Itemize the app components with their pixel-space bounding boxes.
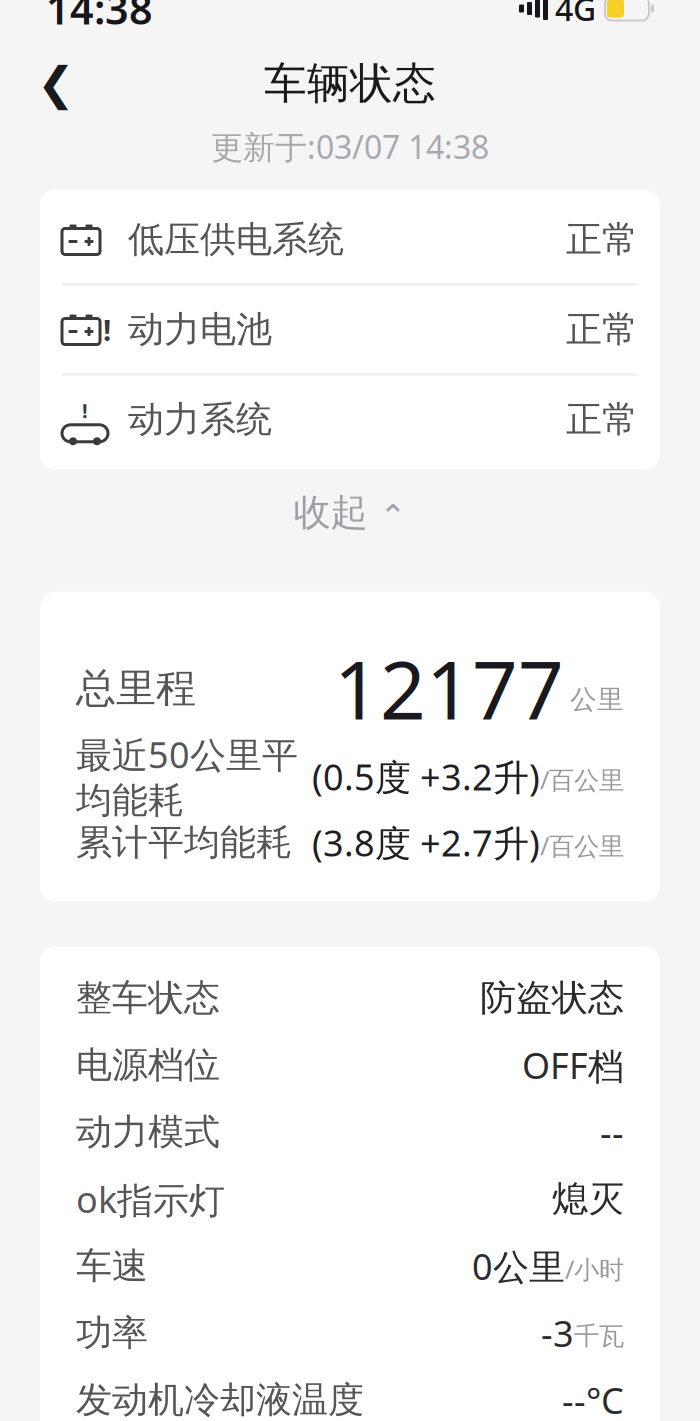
- staticText: (3.8度 +2.7升): [312, 819, 540, 866]
- staticText: 防盗状态: [480, 976, 624, 1020]
- staticText: 最近50公里平均能耗: [76, 730, 298, 822]
- staticText: 功率: [76, 1311, 148, 1355]
- button[interactable]: 低压供电系统: [40, 195, 660, 283]
- staticText: 12177: [334, 635, 564, 742]
- staticText: 整车状态: [76, 976, 220, 1020]
- staticText: /百公里: [540, 829, 624, 862]
- staticText: /小时: [565, 1252, 624, 1286]
- button[interactable]: 返回: [24, 51, 88, 115]
- staticText: ok指示灯: [76, 1175, 225, 1223]
- staticText: 4G: [555, 0, 596, 30]
- staticText: 正常: [566, 397, 638, 442]
- staticText: 正常: [566, 217, 638, 262]
- staticText: ❮: [37, 58, 75, 109]
- staticText: 动力模式: [76, 1110, 220, 1154]
- staticText: 动力系统: [128, 397, 272, 442]
- staticText: -3: [541, 1309, 574, 1357]
- staticText: (0.5度 +3.2升): [312, 753, 540, 800]
- staticText: 正常: [566, 307, 638, 352]
- staticText: 发动机冷却液温度: [76, 1378, 364, 1421]
- staticText: 电源档位: [76, 1043, 220, 1087]
- staticText: ⌃: [379, 498, 406, 535]
- staticText: --°C: [562, 1376, 624, 1421]
- staticText: 车速: [76, 1244, 148, 1288]
- button[interactable]: !: [40, 285, 660, 373]
- staticText: !: [103, 310, 111, 349]
- staticText: 14:38: [46, 0, 153, 36]
- staticText: 0公里: [472, 1242, 565, 1290]
- staticText: 更新于:03/07 14:38: [211, 125, 489, 168]
- staticText: 累计平均能耗: [76, 820, 292, 865]
- staticText: !: [82, 397, 88, 424]
- button[interactable]: !: [40, 375, 660, 463]
- staticText: 收起: [293, 490, 367, 535]
- staticText: 熄灭: [552, 1177, 624, 1221]
- button[interactable]: 收起: [0, 469, 700, 555]
- staticText: 总里程: [76, 664, 196, 713]
- staticText: --: [600, 1108, 624, 1156]
- staticText: OFF档: [522, 1041, 624, 1089]
- staticText: 动力电池: [128, 307, 272, 352]
- staticText: 车辆状态: [264, 57, 436, 110]
- staticText: /百公里: [540, 763, 624, 796]
- staticText: 低压供电系统: [128, 217, 344, 262]
- staticText: 千瓦: [574, 1320, 624, 1351]
- staticText: 公里: [570, 683, 624, 716]
